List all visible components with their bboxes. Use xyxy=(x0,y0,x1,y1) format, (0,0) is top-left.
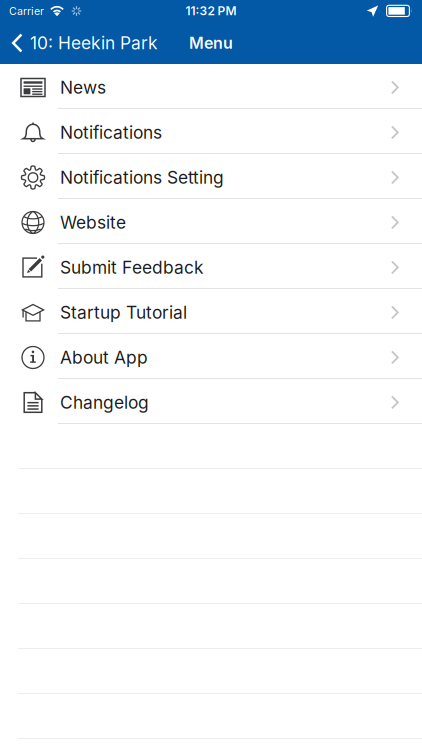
button[interactable]: 10: Heekin Park xyxy=(0,22,168,64)
staticText: 10: Heekin Park xyxy=(30,32,158,53)
button[interactable]: Notifications Setting xyxy=(0,154,422,199)
staticText: Carrier xyxy=(9,4,44,17)
staticText: Notifications xyxy=(60,122,162,143)
staticText: Notifications Setting xyxy=(60,167,224,188)
staticText: About App xyxy=(60,347,148,368)
button[interactable]: Website xyxy=(0,199,422,244)
staticText: Changelog xyxy=(60,392,149,413)
staticText: News xyxy=(60,77,106,98)
staticText: Submit Feedback xyxy=(60,257,204,278)
button[interactable]: Startup Tutorial xyxy=(0,289,422,334)
button[interactable]: About App xyxy=(0,334,422,379)
staticText: Startup Tutorial xyxy=(60,302,187,323)
staticText: Menu xyxy=(189,33,233,53)
button[interactable]: News xyxy=(0,64,422,109)
staticText: Website xyxy=(60,212,126,233)
button[interactable]: Notifications xyxy=(0,109,422,154)
button[interactable]: Changelog xyxy=(0,379,422,424)
button[interactable]: Submit Feedback xyxy=(0,244,422,289)
staticText: 11:32 PM xyxy=(185,4,236,18)
